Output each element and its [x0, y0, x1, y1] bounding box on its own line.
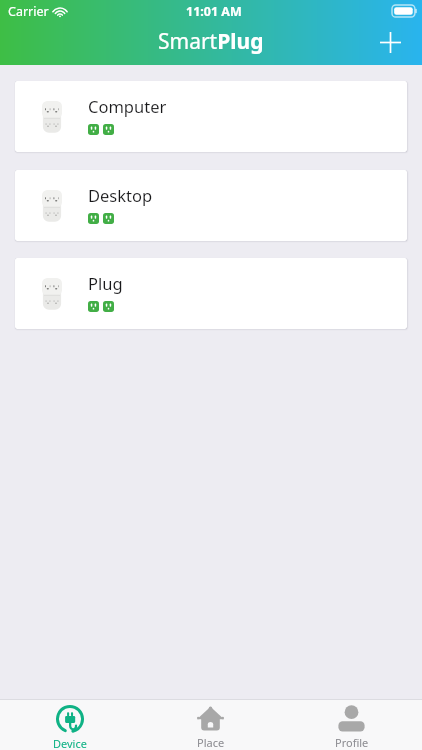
button[interactable]: Desktop [15, 170, 407, 241]
button[interactable]: Plug [15, 258, 407, 329]
staticText: Carrier [8, 3, 49, 20]
staticText: Profile [335, 735, 369, 750]
staticText: Device [53, 736, 87, 750]
button[interactable]: Add device [370, 24, 410, 64]
button[interactable]: Profile [281, 705, 422, 750]
button[interactable]: Device [0, 705, 140, 750]
staticText: Place [197, 735, 225, 750]
staticText: Desktop [88, 184, 153, 206]
staticText: Plug [88, 272, 123, 294]
staticText: SmartPlug [158, 27, 264, 56]
button[interactable]: Place [140, 705, 281, 750]
staticText: Computer [88, 95, 167, 117]
button[interactable]: Computer [15, 81, 407, 152]
staticText: 11:01 AM [186, 3, 242, 20]
